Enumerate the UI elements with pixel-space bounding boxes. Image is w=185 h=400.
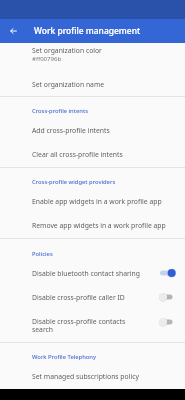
staticText: Set organization color xyxy=(32,46,102,55)
button[interactable]: Add cross-profile intents xyxy=(0,126,185,135)
button[interactable]: Toggle xyxy=(158,292,177,302)
staticText: Disable bluetooth contact sharing xyxy=(32,269,142,278)
button[interactable]: Set organization name xyxy=(0,80,185,89)
staticText: Work profile management xyxy=(34,25,141,37)
staticText: Set organization name xyxy=(32,80,105,89)
staticText: Enable app widgets in a work profile app xyxy=(32,197,162,206)
staticText: Policies xyxy=(32,250,53,258)
staticText: Work Profile Telephony xyxy=(32,353,97,361)
button[interactable]: Disable cross-profile contacts search xyxy=(0,317,185,334)
staticText: #ff00796b xyxy=(32,54,62,62)
staticText: Cross-profile widget providers xyxy=(32,178,116,186)
button[interactable]: Clear all cross-profile intents xyxy=(0,150,185,159)
button[interactable]: Enable app widgets in a work profile app xyxy=(0,197,185,206)
staticText: Cross-profile intents xyxy=(32,107,88,115)
staticText: Disable cross-profile contacts search xyxy=(32,317,142,334)
button[interactable]: Toggle xyxy=(158,317,177,327)
staticText: Disable cross-profile caller ID xyxy=(32,293,142,302)
button[interactable]: Remove app widgets in a work profile app xyxy=(0,221,185,230)
button[interactable]: Disable cross-profile caller ID xyxy=(0,293,185,303)
staticText: Clear all cross-profile intents xyxy=(32,150,123,159)
staticText: Add cross-profile intents xyxy=(32,126,110,135)
staticText: Set managed subscriptions policy xyxy=(32,372,139,381)
button[interactable]: Back xyxy=(5,23,21,39)
staticText: Remove app widgets in a work profile app xyxy=(32,221,166,230)
button[interactable]: Disable bluetooth contact sharing xyxy=(0,269,185,279)
button[interactable]: Set managed subscriptions policy xyxy=(0,372,185,381)
button[interactable]: Set organization color xyxy=(0,46,185,63)
button[interactable]: Toggle xyxy=(158,268,177,278)
